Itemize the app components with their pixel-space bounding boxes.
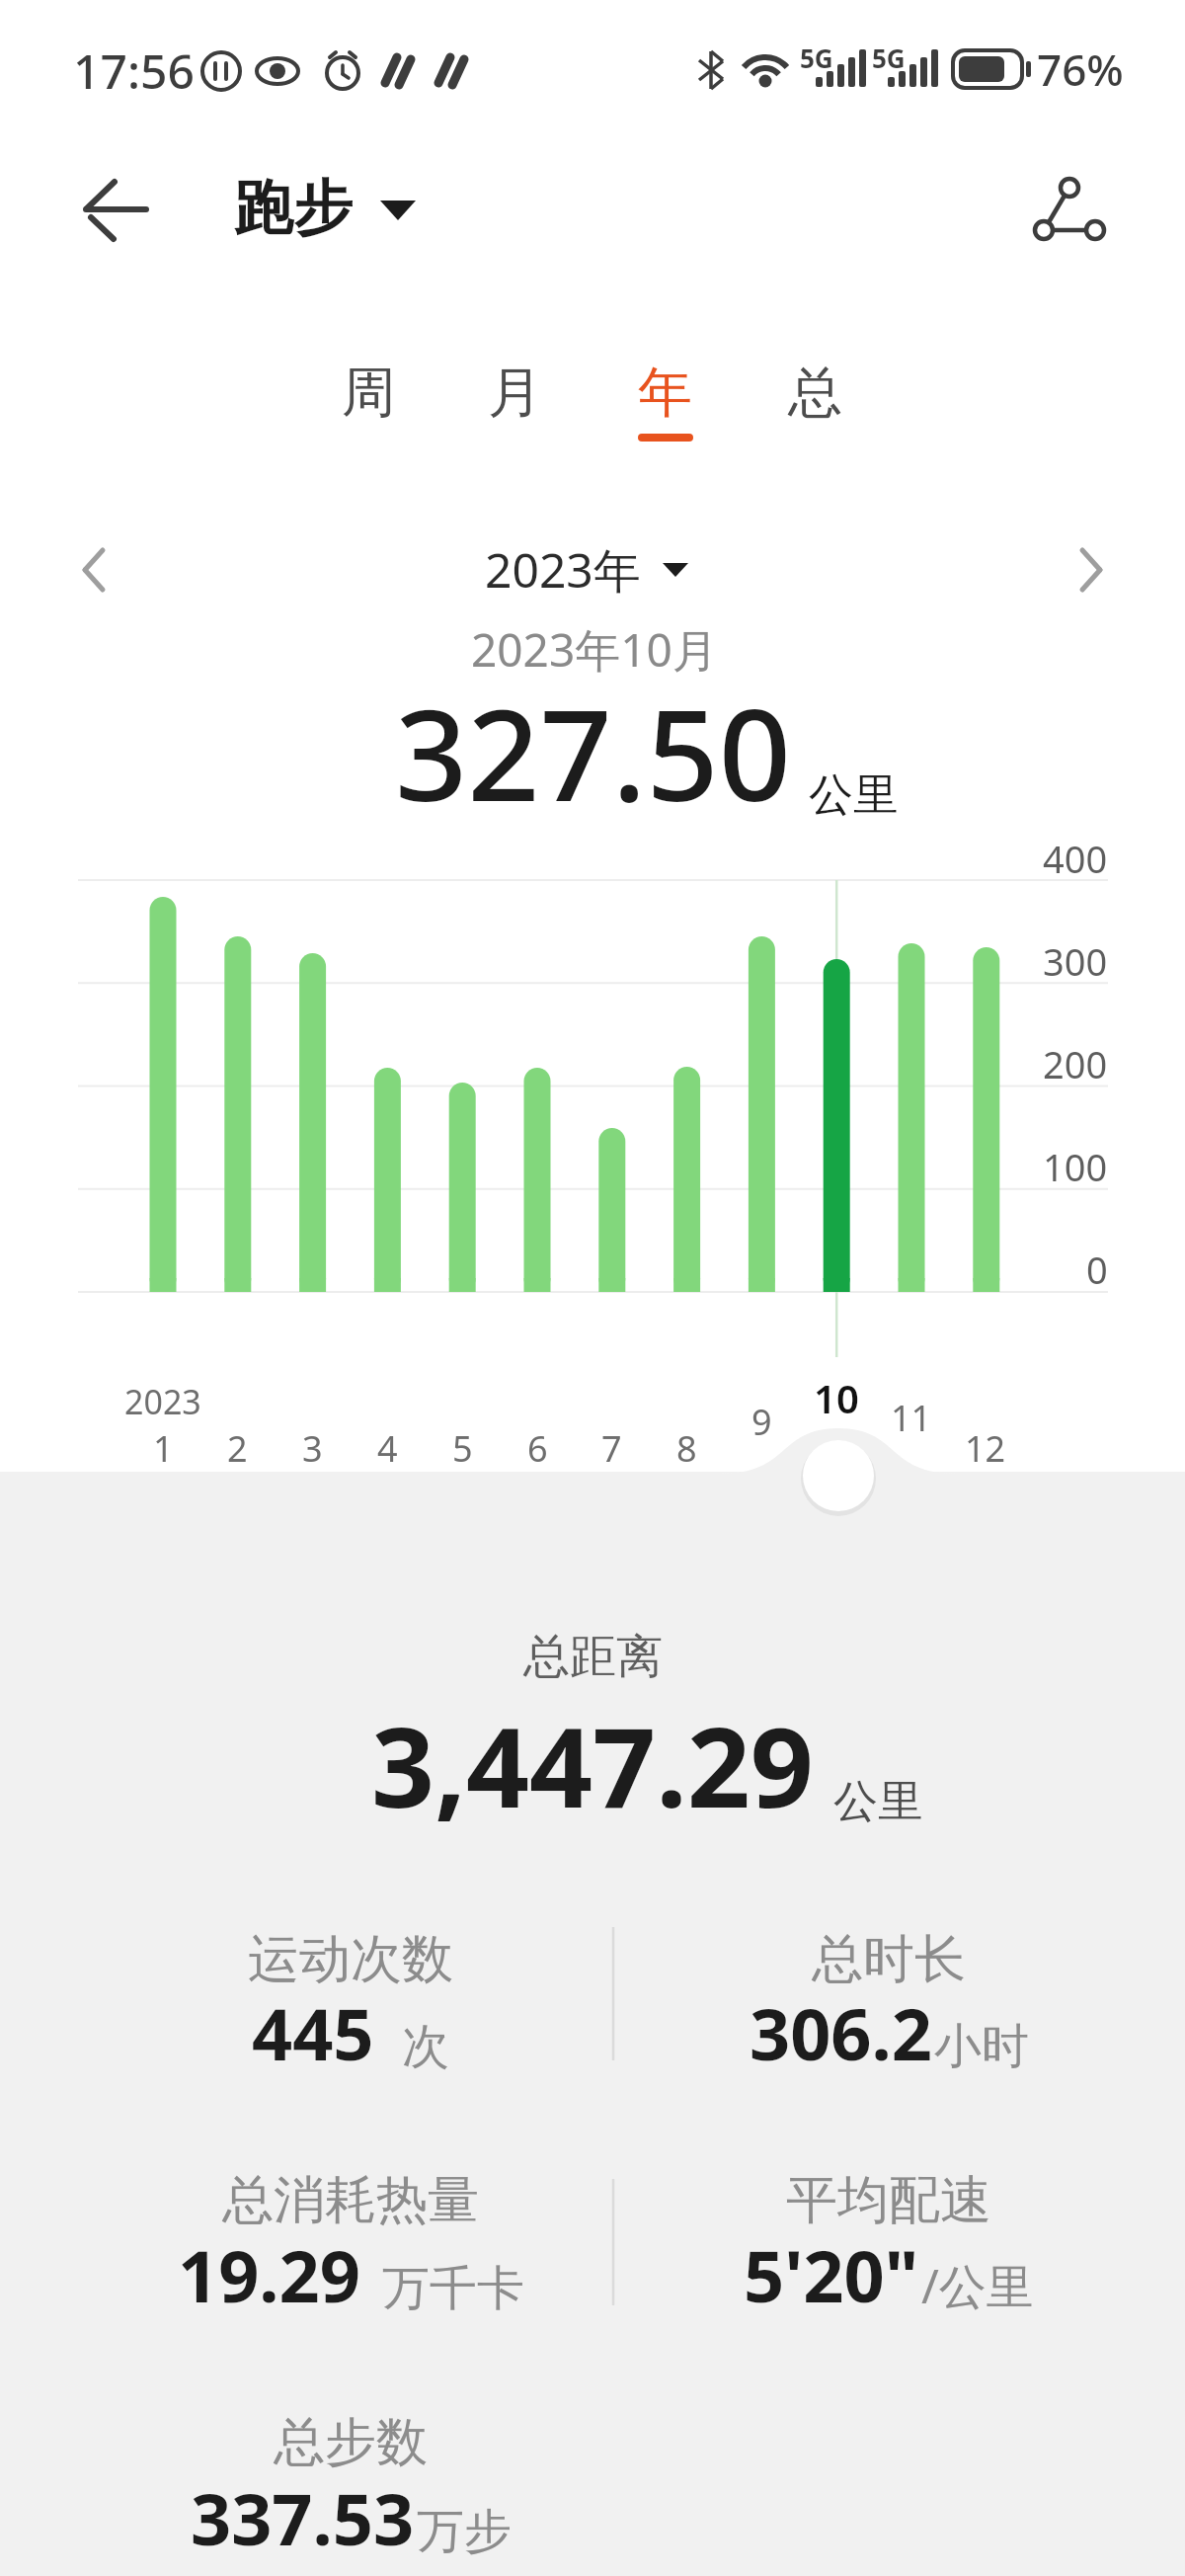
staticText: 306.2 [750, 1984, 932, 2081]
staticText: 月 [488, 359, 542, 427]
staticText: 19.29 [178, 2226, 360, 2323]
staticText: 7 [601, 1424, 622, 1473]
staticText: 327.50 [395, 666, 791, 838]
staticText: 2 [227, 1424, 248, 1473]
staticText: 3 [302, 1424, 323, 1473]
button[interactable]: 总 [750, 343, 879, 442]
button[interactable] [54, 158, 153, 262]
staticText: 12 [965, 1424, 1006, 1473]
button[interactable]: 周 [304, 343, 433, 442]
staticText: 6 [527, 1424, 548, 1473]
staticText: 周 [342, 359, 396, 427]
staticText: 5G [872, 40, 906, 75]
staticText: /公里 [921, 2253, 1034, 2318]
staticText: 4 [377, 1424, 398, 1473]
staticText: 10 [814, 1371, 859, 1424]
staticText: 2023年 [485, 537, 641, 603]
staticText: 2023 [124, 1379, 201, 1424]
button[interactable]: 跑步 [234, 163, 416, 254]
staticText: 5'20" [744, 2226, 919, 2323]
staticText: 总 [788, 359, 842, 427]
staticText: 337.53 [191, 2469, 415, 2566]
staticText: 总步数 [274, 2410, 428, 2475]
staticText: 8 [676, 1424, 697, 1473]
staticText: 100 [1043, 1141, 1108, 1192]
staticText: 445 [252, 1984, 374, 2081]
staticText: 公里 [833, 1774, 922, 1830]
staticText: 300 [1043, 935, 1108, 987]
staticText: 万千卡 [382, 2259, 524, 2318]
button[interactable] [1012, 153, 1121, 262]
staticText: 运动次数 [248, 1927, 453, 1992]
staticText: 11 [891, 1394, 932, 1442]
button[interactable]: 2023年 [485, 537, 688, 603]
button[interactable]: 月 [450, 343, 579, 442]
staticText: 总距离 [523, 1628, 663, 1686]
staticText: 400 [1043, 833, 1108, 884]
staticText: 小时 [934, 2017, 1029, 2076]
staticText: 1 [153, 1424, 174, 1473]
staticText: 总消耗热量 [222, 2168, 479, 2233]
staticText: 跑步 [234, 171, 353, 246]
staticText: 万步 [417, 2502, 512, 2561]
staticText: 200 [1043, 1038, 1108, 1089]
staticText: 总时长 [812, 1927, 966, 1992]
staticText: 76% [1037, 40, 1124, 99]
button[interactable] [54, 525, 133, 614]
staticText: 0 [1086, 1244, 1108, 1295]
staticText: 3,447.29 [371, 1689, 814, 1840]
staticText: 平均配速 [786, 2168, 991, 2233]
staticText: 17:56 [73, 39, 195, 103]
staticText: 9 [751, 1398, 772, 1446]
staticText: 5 [452, 1424, 473, 1473]
staticText: 5G [800, 40, 833, 75]
staticText: 次 [402, 2017, 449, 2076]
staticText: 公里 [809, 767, 898, 824]
staticText: 年 [638, 359, 692, 427]
button[interactable]: 年 [600, 343, 729, 442]
staticText: 2023年10月 [471, 618, 718, 681]
button[interactable] [802, 1439, 875, 1512]
button[interactable] [1052, 525, 1131, 614]
